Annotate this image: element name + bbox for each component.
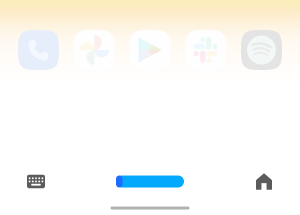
button[interactable]: Spotify bbox=[234, 30, 289, 70]
button[interactable]: Photos bbox=[66, 30, 122, 70]
button[interactable]: Keyboard bbox=[9, 170, 63, 192]
button[interactable]: Play Store bbox=[122, 30, 178, 70]
button[interactable]: Home bbox=[237, 170, 291, 192]
button[interactable]: Slack bbox=[178, 30, 234, 70]
button[interactable]: Phone bbox=[11, 30, 66, 70]
button[interactable]: Gesture navigation bar bbox=[116, 170, 184, 192]
